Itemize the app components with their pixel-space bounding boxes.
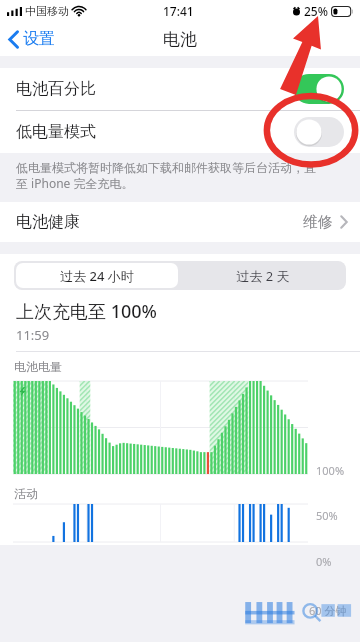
staticText: 25% bbox=[304, 3, 328, 19]
staticText: 低电量模式将暂时降低如下载和邮件获取等后台活动，直 bbox=[16, 160, 316, 175]
staticText: 17:41 bbox=[163, 3, 194, 19]
other: Annotation arrow bbox=[0, 0, 360, 642]
button[interactable]: 电池健康 bbox=[0, 202, 360, 242]
staticText: 电池健康 bbox=[16, 212, 80, 232]
button[interactable]: 电池百分比 bbox=[0, 68, 360, 110]
staticText: 11:59 bbox=[16, 326, 50, 344]
staticText: 过去 24 小时 bbox=[60, 267, 134, 285]
staticText: 60 分钟 bbox=[309, 603, 347, 618]
button[interactable]: 低电量模式 bbox=[0, 111, 360, 153]
button[interactable]: 设置 bbox=[0, 29, 63, 49]
staticText: 维修 bbox=[303, 213, 333, 232]
staticText: 上次充电至 100% bbox=[16, 299, 157, 324]
button[interactable]: Off bbox=[294, 117, 344, 147]
staticText: 电池电量 bbox=[14, 359, 62, 374]
staticText: 过去 2 天 bbox=[236, 267, 290, 285]
staticText: 设置 bbox=[23, 29, 55, 49]
staticText: 0% bbox=[316, 554, 332, 569]
button[interactable]: 过去 2 天 bbox=[180, 261, 346, 290]
staticText: 100% bbox=[316, 463, 345, 478]
staticText: 低电量模式 bbox=[16, 122, 96, 142]
button[interactable]: On bbox=[294, 74, 344, 104]
staticText: 中国移动 bbox=[25, 4, 69, 18]
staticText: 活动 bbox=[14, 486, 38, 501]
staticText: 至 iPhone 完全充电。 bbox=[16, 175, 134, 191]
staticText: 电池 bbox=[163, 29, 197, 50]
staticText: 电池百分比 bbox=[16, 79, 96, 99]
staticText: 50% bbox=[316, 508, 338, 523]
button[interactable]: 过去 24 小时 bbox=[16, 263, 178, 288]
